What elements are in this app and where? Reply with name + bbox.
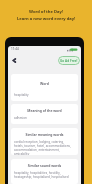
- button[interactable]: Similar meaning words: [11, 128, 78, 155]
- staticText: Word: [11, 81, 78, 86]
- staticText: Meaning of the word: [11, 108, 78, 113]
- button[interactable]: Word: [11, 74, 78, 101]
- staticText: 11:44: [11, 47, 19, 51]
- staticText: cordial reception, lodging, catering, ho…: [14, 140, 71, 155]
- staticText: hospitality, hospitalities, hostility, h…: [14, 171, 69, 179]
- staticText: Word of the Day!: [29, 9, 63, 15]
- staticText: Similar meaning words: [11, 132, 78, 137]
- button[interactable]: Back: [9, 55, 19, 65]
- staticText: Learn a new word every day!: [17, 16, 76, 22]
- staticText: adhesion: [14, 116, 27, 120]
- staticText: Go Ad Free!: [60, 59, 78, 63]
- button[interactable]: Similar sound words: [11, 159, 78, 184]
- staticText: Similar sound words: [11, 163, 78, 168]
- button[interactable]: Meaning of the word: [11, 104, 78, 124]
- button[interactable]: Go Ad Free!: [58, 56, 80, 65]
- staticText: hospitality: [14, 93, 29, 97]
